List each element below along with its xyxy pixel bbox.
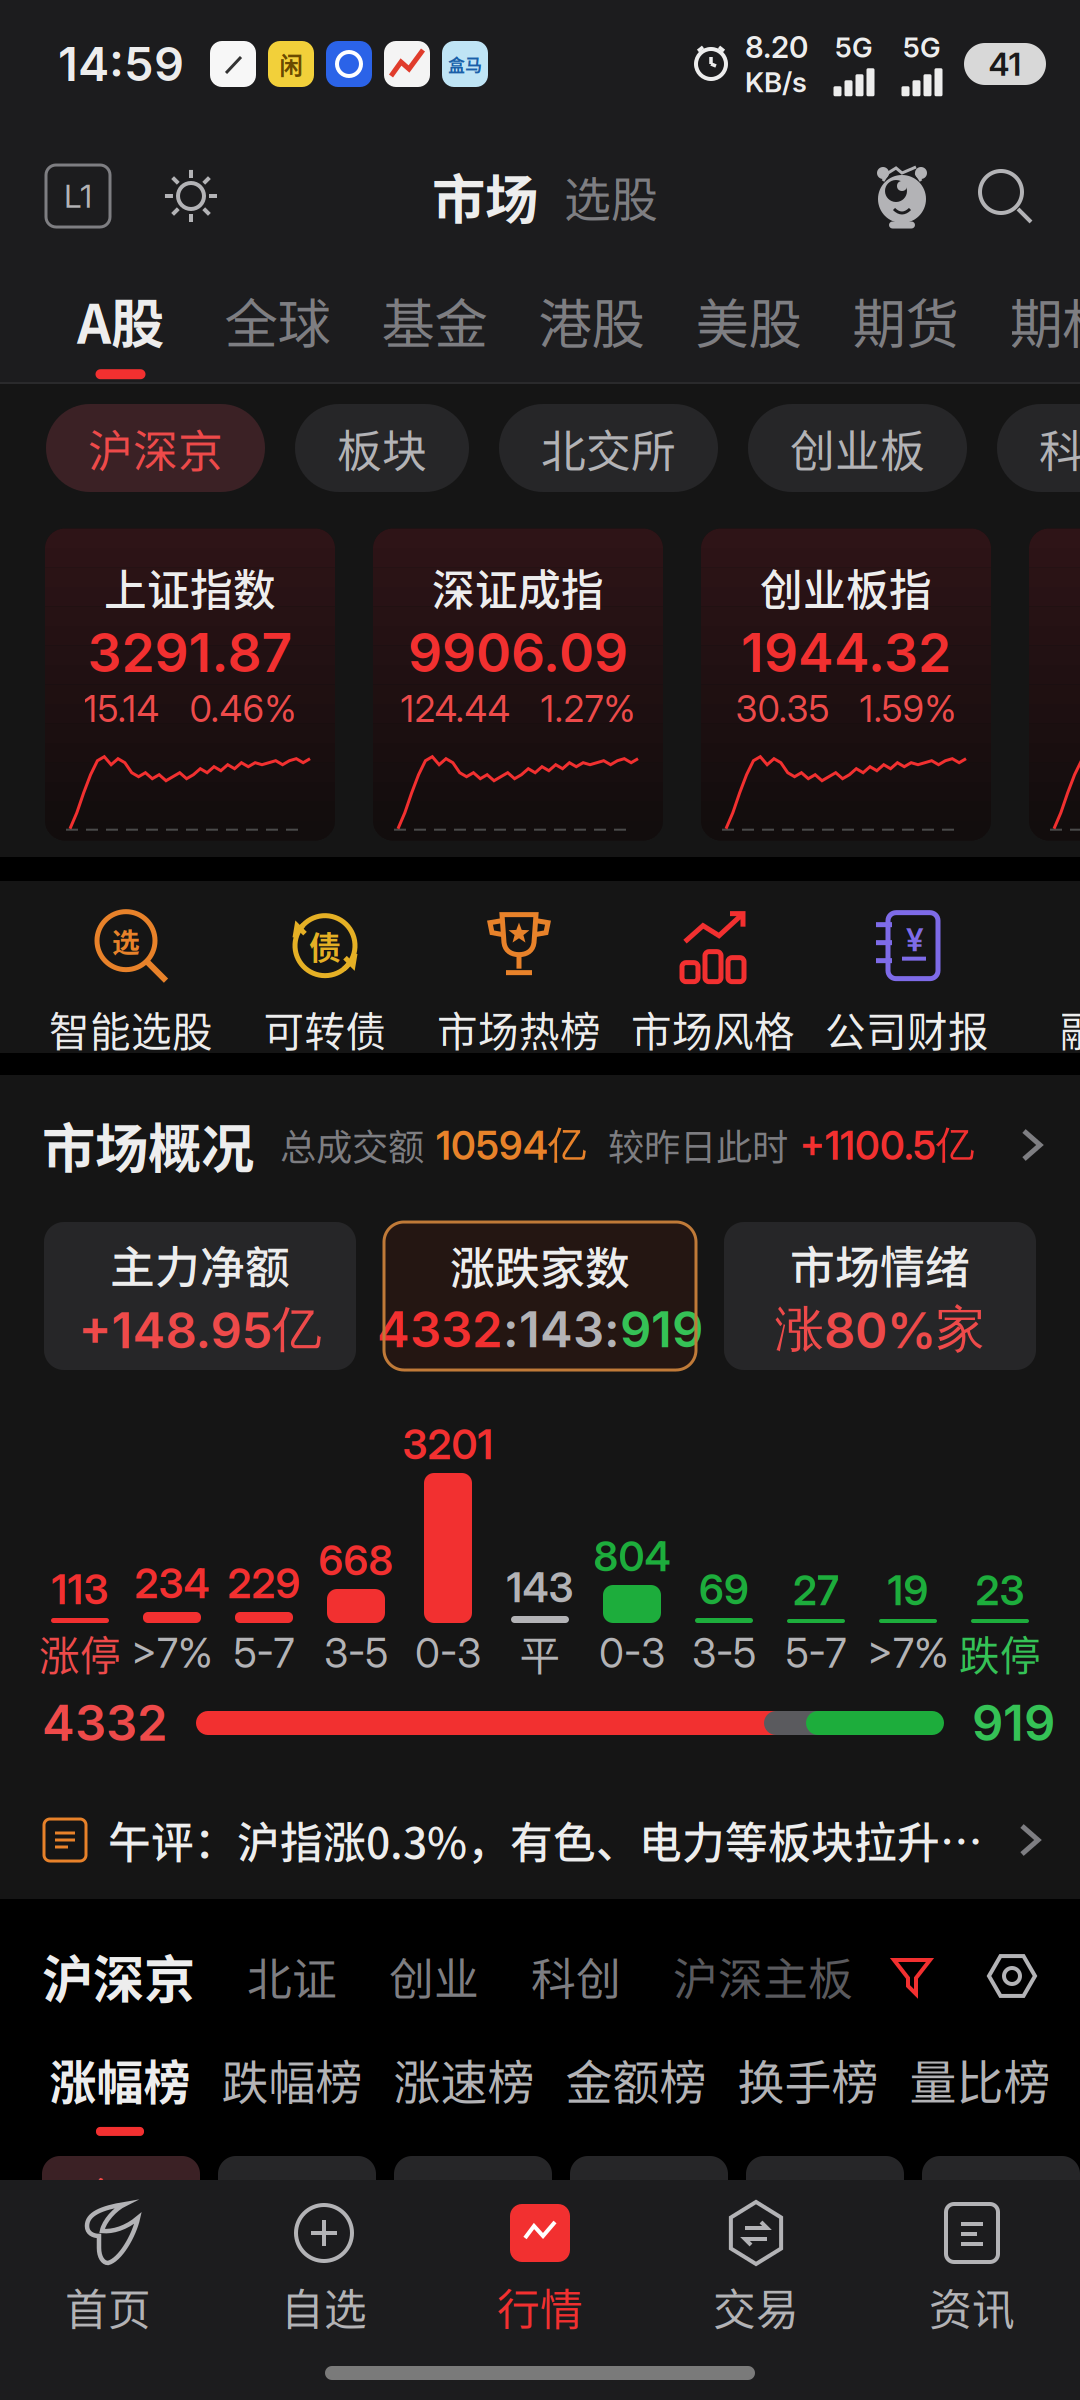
- staticText: 229: [227, 1559, 300, 1608]
- staticText: 5G: [903, 31, 941, 64]
- button[interactable]: A股: [42, 264, 199, 382]
- button[interactable]: 债: [228, 881, 422, 1053]
- button[interactable]: 基金: [356, 264, 513, 382]
- button[interactable]: 20日: [746, 2156, 904, 2234]
- staticText: 69: [699, 1565, 749, 1614]
- button[interactable]: 创业板: [748, 404, 967, 492]
- button[interactable]: 创业板指: [701, 528, 991, 840]
- staticText: 3-5: [692, 1628, 756, 1677]
- staticText: 期货: [852, 282, 958, 359]
- button[interactable]: 市场热榜: [422, 881, 616, 1053]
- button[interactable]: 选: [34, 881, 228, 1053]
- button[interactable]: 今日: [42, 2156, 200, 2234]
- staticText: 20日: [782, 2166, 867, 2224]
- staticText: 跌停: [959, 1624, 1041, 1682]
- staticText: 60: [979, 2166, 1023, 2224]
- staticText: 0-3: [599, 1628, 665, 1677]
- button[interactable]: 融资: [1004, 881, 1080, 1053]
- staticText: 1.59%: [859, 687, 956, 731]
- staticText: 14:59: [58, 36, 184, 92]
- staticText: 创业板指: [760, 556, 932, 618]
- staticText: 涨80%家: [775, 1298, 985, 1360]
- button[interactable]: 选股: [564, 162, 658, 230]
- staticText: +148.95亿: [78, 1298, 321, 1360]
- staticText: 可转债: [263, 1000, 386, 1058]
- button[interactable]: 自选: [216, 2180, 432, 2346]
- button[interactable]: 60: [922, 2156, 1080, 2234]
- button[interactable]: 5日: [394, 2156, 552, 2234]
- staticText: 主力净额: [110, 1232, 290, 1297]
- button[interactable]: 涨幅榜: [34, 2031, 206, 2147]
- button[interactable]: 全球: [199, 264, 356, 382]
- staticText: 量比榜: [909, 2045, 1050, 2113]
- staticText: 市场热榜: [437, 1000, 601, 1058]
- button[interactable]: 交易: [648, 2180, 864, 2346]
- button[interactable]: 美股: [670, 264, 827, 382]
- button[interactable]: 板块: [295, 404, 469, 492]
- staticText: 234: [134, 1559, 209, 1608]
- button[interactable]: 沪深京: [46, 404, 265, 492]
- button[interactable]: 主力净额: [44, 1222, 356, 1370]
- button[interactable]: 上证指数: [45, 528, 335, 840]
- staticText: 1.27%: [540, 687, 635, 731]
- button[interactable]: 资讯: [864, 2180, 1080, 2346]
- button[interactable]: 市场概况: [0, 1075, 1080, 1215]
- staticText: 选股: [564, 162, 658, 230]
- staticText: 科创: [531, 1944, 621, 2008]
- button[interactable]: 10日: [570, 2156, 728, 2234]
- staticText: 27: [793, 1566, 839, 1615]
- button[interactable]: 北交所: [499, 404, 718, 492]
- button[interactable]: 跌幅榜: [206, 2031, 378, 2147]
- staticText: 5-7: [785, 1628, 846, 1677]
- staticText: 金额榜: [565, 2045, 706, 2113]
- button[interactable]: 北证50: [1029, 528, 1080, 840]
- staticText: 自选: [281, 2276, 367, 2338]
- button[interactable]: 深证成指: [373, 528, 663, 840]
- staticText: 4332: [377, 1300, 503, 1359]
- button[interactable]: Search: [976, 167, 1034, 225]
- button[interactable]: 3日: [218, 2156, 376, 2234]
- staticText: 闲: [279, 47, 302, 81]
- button[interactable]: 科: [997, 404, 1080, 492]
- staticText: 3-5: [324, 1628, 388, 1677]
- button[interactable]: 市场情绪: [724, 1222, 1036, 1370]
- staticText: 涨停: [39, 1624, 121, 1682]
- button[interactable]: ¥: [810, 881, 1004, 1053]
- staticText: A股: [77, 282, 164, 359]
- staticText: 行情: [497, 2276, 583, 2338]
- button[interactable]: 金额榜: [550, 2031, 722, 2147]
- button[interactable]: L1 quote level: [46, 165, 110, 227]
- button[interactable]: 换手榜: [722, 2031, 894, 2147]
- staticText: 0-3: [415, 1628, 481, 1677]
- button[interactable]: 涨跌家数: [384, 1222, 696, 1370]
- button[interactable]: 午评：沪指涨0.3%，有色、电力等板块拉升…: [0, 1781, 1080, 1899]
- staticText: 午评：沪指涨0.3%，有色、电力等板块拉升…: [108, 1809, 983, 1871]
- button[interactable]: 期货: [827, 264, 984, 382]
- staticText: KB/s: [745, 65, 807, 99]
- staticText: 上证指数: [104, 556, 276, 618]
- button[interactable]: 涨速榜: [378, 2031, 550, 2147]
- button[interactable]: 港股: [513, 264, 670, 382]
- staticText: 今日: [80, 2166, 162, 2224]
- staticText: 北交所: [541, 416, 676, 480]
- button[interactable]: AI assistant: [870, 165, 934, 227]
- staticText: 北证: [247, 1944, 337, 2008]
- staticText: 143: [506, 1563, 573, 1612]
- button[interactable]: Brightness: [162, 167, 220, 225]
- staticText: 交易: [713, 2276, 799, 2338]
- staticText: :: [604, 1300, 620, 1359]
- staticText: 19: [887, 1566, 928, 1615]
- button[interactable]: 量比榜: [894, 2031, 1066, 2147]
- staticText: 23: [975, 1566, 1024, 1615]
- button[interactable]: 行情: [432, 2180, 648, 2346]
- button[interactable]: 首页: [0, 2180, 216, 2346]
- staticText: 市场风格: [631, 1000, 795, 1058]
- button[interactable]: 市场风格: [616, 881, 810, 1053]
- staticText: 首页: [65, 2276, 151, 2338]
- staticText: 基金: [381, 282, 487, 359]
- button[interactable]: Settings: [986, 1950, 1038, 2002]
- button[interactable]: 期权: [984, 264, 1080, 382]
- staticText: 公司财报: [825, 1000, 989, 1058]
- staticText: 科: [1039, 416, 1080, 480]
- button[interactable]: Filter: [888, 1952, 936, 2000]
